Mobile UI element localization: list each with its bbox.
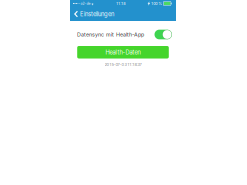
staticText: o2-de bbox=[81, 1, 91, 6]
staticText: Datensync mit Health-App bbox=[77, 31, 144, 38]
staticText: 2015-07-03 11:18:37 bbox=[104, 62, 141, 67]
button[interactable]: Health-Daten bbox=[77, 46, 169, 58]
staticText: Health-Daten bbox=[105, 49, 140, 56]
staticText: 11:18 bbox=[116, 1, 125, 6]
staticText: 100 % bbox=[151, 1, 162, 6]
button[interactable]: Datensync mit Health-App bbox=[154, 30, 172, 39]
button[interactable]: Einstellungen bbox=[70, 7, 117, 21]
staticText: Einstellungen bbox=[80, 10, 114, 18]
